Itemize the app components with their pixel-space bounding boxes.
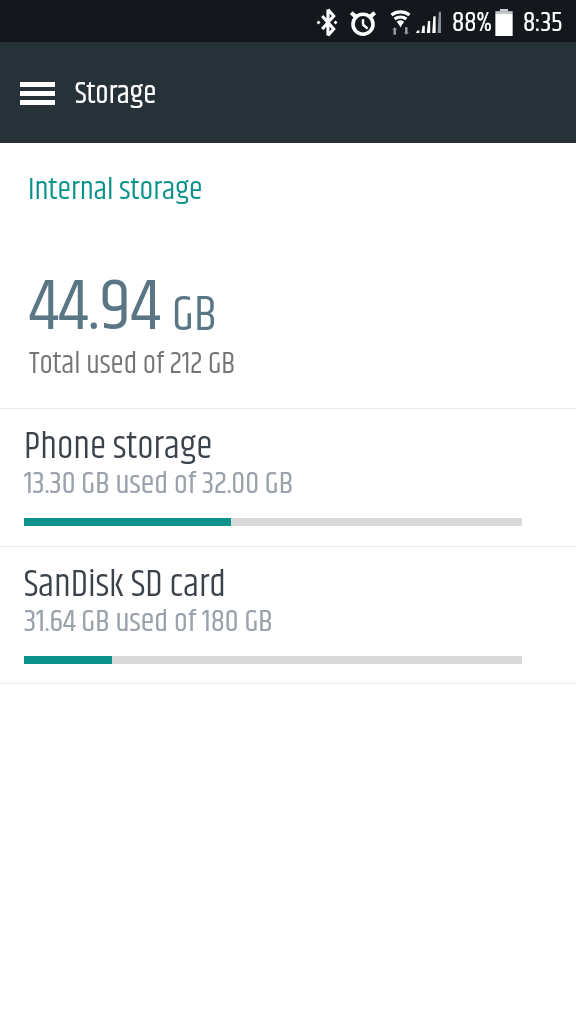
- staticText: 8:35: [523, 3, 563, 44]
- staticText: Phone storage: [24, 419, 213, 476]
- button[interactable]: Phone storage: [0, 408, 576, 546]
- staticText: 44.94: [29, 252, 161, 364]
- staticText: SanDisk SD card: [24, 557, 226, 614]
- button[interactable]: SanDisk SD card: [0, 546, 576, 684]
- staticText: Storage: [75, 72, 157, 118]
- staticText: Internal storage: [28, 166, 203, 213]
- staticText: Total used of 212 GB: [29, 342, 236, 388]
- staticText: 88%: [452, 3, 492, 44]
- button[interactable]: Open navigation drawer: [13, 69, 61, 117]
- staticText: GB: [172, 279, 217, 354]
- staticText: 13.30 GB used of 32.00 GB: [24, 460, 294, 507]
- staticText: 31.64 GB used of 180 GB: [24, 598, 273, 645]
